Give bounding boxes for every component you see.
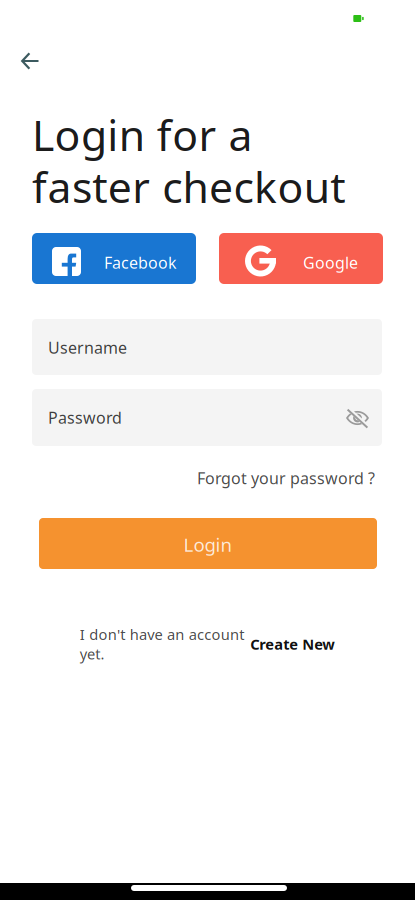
button[interactable]: Create New — [250, 634, 335, 654]
button[interactable]: Forgot your password ? — [191, 468, 375, 488]
staticText: Facebook — [104, 252, 177, 273]
staticText: Create New — [250, 634, 335, 654]
staticText: Login for a — [32, 106, 252, 163]
staticText: Username — [48, 337, 127, 358]
button[interactable]: Login — [39, 518, 377, 569]
button[interactable]: Back — [8, 39, 52, 83]
staticText: I don't have an account yet. — [80, 624, 244, 663]
button[interactable]: Password — [32, 389, 382, 446]
staticText: Forgot your password ? — [197, 467, 375, 489]
staticText: Google — [303, 252, 358, 273]
button[interactable]: Facebook — [32, 233, 196, 284]
staticText: Login — [183, 532, 232, 557]
button[interactable]: Username — [32, 319, 382, 375]
staticText: Password — [48, 407, 122, 428]
button[interactable]: Google — [219, 233, 383, 284]
staticText: faster checkout — [32, 158, 345, 215]
